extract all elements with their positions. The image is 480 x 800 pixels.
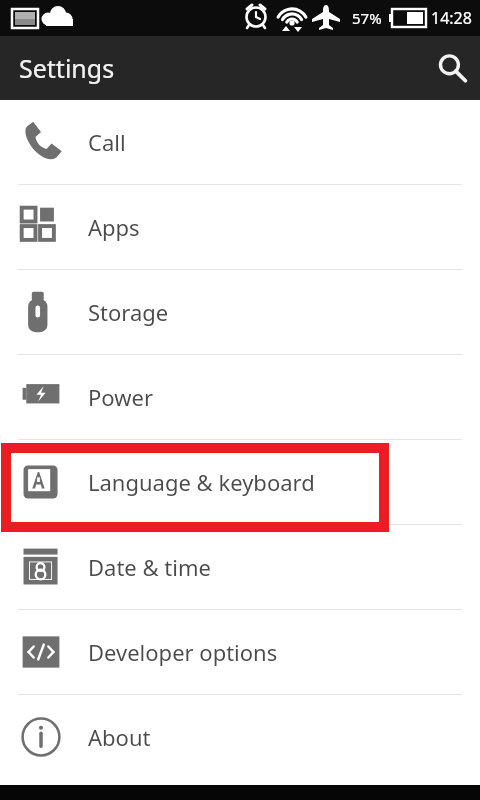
button[interactable]: Language & keyboard [0, 440, 480, 524]
staticText: 57% [352, 8, 382, 28]
button[interactable]: Developer options [0, 610, 480, 694]
staticText: Storage [88, 297, 169, 327]
staticText: Settings [19, 51, 115, 85]
button[interactable]: Search [424, 40, 480, 96]
staticText: 14:28 [431, 7, 472, 29]
button[interactable]: About [0, 695, 480, 779]
staticText: Language & keyboard [88, 467, 315, 497]
button[interactable]: Call [0, 100, 480, 184]
staticText: Developer options [88, 637, 278, 667]
button[interactable]: Power [0, 355, 480, 439]
staticText: About [88, 722, 151, 752]
button[interactable]: Date & time [0, 525, 480, 609]
staticText: Apps [88, 212, 140, 242]
button[interactable]: Storage [0, 270, 480, 354]
staticText: Date & time [88, 552, 211, 582]
staticText: Call [88, 127, 126, 157]
staticText: Power [88, 382, 153, 412]
button[interactable]: Apps [0, 185, 480, 269]
